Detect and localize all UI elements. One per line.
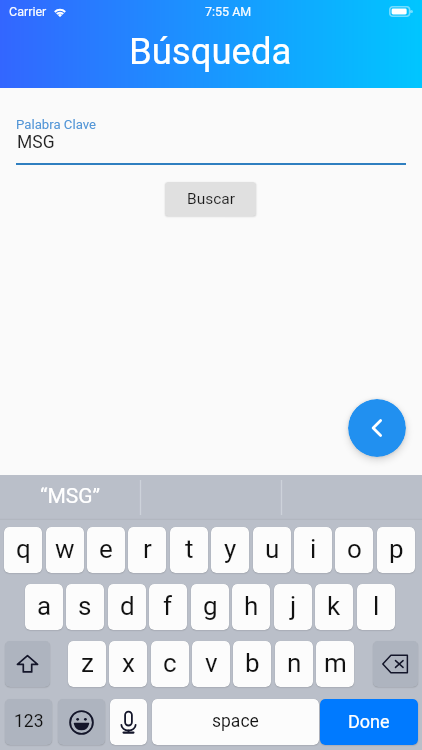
button[interactable]: m xyxy=(316,641,354,687)
staticText: i xyxy=(310,534,317,564)
staticText: y xyxy=(224,534,237,564)
staticText: h xyxy=(244,591,259,621)
staticText: j xyxy=(290,591,297,621)
button[interactable]: d xyxy=(108,584,146,630)
staticText: Buscar xyxy=(187,190,235,208)
staticText: g xyxy=(203,591,218,621)
button[interactable]: Shift xyxy=(5,641,50,687)
staticText: 123 xyxy=(14,711,44,732)
staticText: Done xyxy=(348,711,390,732)
staticText: x xyxy=(122,648,135,678)
button[interactable]: Back xyxy=(348,399,406,457)
staticText: c xyxy=(163,648,177,678)
button[interactable]: Backspace xyxy=(373,641,418,687)
staticText: space xyxy=(212,711,259,732)
button[interactable]: e xyxy=(87,527,125,573)
staticText: d xyxy=(120,591,135,621)
staticText: o xyxy=(347,534,362,564)
staticText: f xyxy=(163,591,173,621)
button[interactable]: a xyxy=(25,584,63,630)
button[interactable]: i xyxy=(294,527,332,573)
button[interactable]: t xyxy=(170,527,208,573)
button[interactable]: Dictate xyxy=(110,699,147,745)
staticText: Carrier xyxy=(9,4,47,19)
button[interactable]: w xyxy=(46,527,84,573)
staticText: “MSG” xyxy=(40,484,101,509)
button[interactable]: u xyxy=(253,527,291,573)
staticText: p xyxy=(389,534,404,564)
button[interactable]: b xyxy=(233,641,271,687)
button[interactable]: 123 xyxy=(5,699,52,745)
button[interactable]: c xyxy=(151,641,189,687)
staticText: 7:55 AM xyxy=(205,4,252,19)
staticText: MSG xyxy=(17,132,55,153)
staticText: r xyxy=(143,534,152,564)
button[interactable]: p xyxy=(377,527,415,573)
button[interactable]: l xyxy=(357,584,395,630)
button[interactable]: o xyxy=(335,527,373,573)
button[interactable]: r xyxy=(128,527,166,573)
button[interactable]: “MSG” xyxy=(0,475,140,520)
staticText: e xyxy=(99,534,113,564)
staticText: m xyxy=(324,648,347,678)
button[interactable]: q xyxy=(4,527,42,573)
button[interactable]: x xyxy=(109,641,147,687)
staticText: Búsqueda xyxy=(129,30,292,73)
button[interactable]: f xyxy=(149,584,187,630)
button[interactable]: h xyxy=(232,584,270,630)
staticText: s xyxy=(78,591,92,621)
staticText: n xyxy=(287,648,302,678)
staticText: b xyxy=(245,648,260,678)
button[interactable]: y xyxy=(211,527,249,573)
button[interactable]: s xyxy=(66,584,104,630)
staticText: l xyxy=(373,591,380,621)
staticText: u xyxy=(265,534,280,564)
button[interactable]: g xyxy=(191,584,229,630)
button[interactable]: v xyxy=(192,641,230,687)
button[interactable]: n xyxy=(275,641,313,687)
staticText: k xyxy=(327,591,341,621)
staticText: v xyxy=(205,648,218,678)
button[interactable]: space xyxy=(152,699,319,745)
staticText: Palabra Clave xyxy=(16,117,97,132)
staticText: t xyxy=(185,534,194,564)
button[interactable]: k xyxy=(315,584,353,630)
button[interactable]: Emoji xyxy=(58,699,105,745)
staticText: w xyxy=(55,534,75,564)
button[interactable]: Buscar xyxy=(165,182,256,216)
staticText: q xyxy=(16,534,31,564)
button[interactable]: j xyxy=(274,584,312,630)
staticText: a xyxy=(37,591,52,621)
button[interactable]: Done xyxy=(320,699,418,745)
button[interactable]: z xyxy=(68,641,106,687)
staticText: z xyxy=(81,648,94,678)
